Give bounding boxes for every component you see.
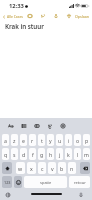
- button[interactable]: f: [29, 148, 36, 160]
- staticText: j: [59, 151, 61, 158]
- staticText: v: [51, 165, 54, 172]
- button[interactable]: b: [58, 162, 66, 174]
- button[interactable]: Attach: [46, 122, 54, 130]
- staticText: Opslaan: [75, 14, 89, 19]
- button[interactable]: k: [65, 148, 72, 160]
- button[interactable]: retour: [69, 176, 90, 188]
- staticText: x: [30, 165, 33, 172]
- button[interactable]: Location: [66, 13, 72, 19]
- button[interactable]: x: [27, 162, 36, 174]
- button[interactable]: Text format: [7, 122, 15, 130]
- button[interactable]: d: [20, 148, 27, 160]
- button[interactable]: m: [83, 148, 90, 160]
- button[interactable]: q: [2, 148, 9, 160]
- button[interactable]: Camera: [27, 13, 33, 19]
- button[interactable]: Emoji keyboard: [14, 176, 22, 188]
- staticText: n: [70, 165, 74, 172]
- staticText: m: [84, 151, 89, 158]
- staticText: Alle Cases: [7, 14, 23, 19]
- button[interactable]: Checklist: [20, 122, 28, 130]
- button[interactable]: w: [16, 162, 25, 174]
- staticText: k: [67, 151, 70, 158]
- button[interactable]: spatie: [24, 176, 67, 188]
- staticText: 123: [4, 180, 11, 185]
- button[interactable]: r: [29, 134, 36, 146]
- button[interactable]: u: [56, 134, 63, 146]
- button[interactable]: i: [65, 134, 72, 146]
- button[interactable]: 123: [2, 176, 12, 188]
- staticText: a: [4, 137, 7, 144]
- button[interactable]: c: [38, 162, 46, 174]
- staticText: w: [18, 165, 23, 172]
- button[interactable]: y: [47, 134, 54, 146]
- button[interactable]: Opslaan: [75, 14, 92, 19]
- staticText: spatie: [40, 180, 52, 185]
- staticText: l: [77, 151, 79, 158]
- staticText: e: [22, 137, 25, 144]
- staticText: r: [31, 137, 34, 144]
- button[interactable]: h: [47, 148, 54, 160]
- staticText: p: [85, 137, 89, 144]
- button[interactable]: z: [11, 134, 18, 146]
- staticText: i: [68, 137, 70, 144]
- staticText: h: [49, 151, 53, 158]
- button[interactable]: Microphone: [53, 13, 59, 19]
- button[interactable]: g: [38, 148, 45, 160]
- staticText: y: [49, 137, 52, 144]
- button[interactable]: s: [11, 148, 18, 160]
- staticText: b: [60, 165, 64, 172]
- staticText: o: [76, 137, 80, 144]
- staticText: q: [4, 151, 8, 158]
- staticText: c: [41, 165, 44, 172]
- button[interactable]: j: [56, 148, 63, 160]
- button[interactable]: Dictate: [78, 192, 84, 198]
- staticText: z: [13, 137, 16, 144]
- staticText: t: [41, 137, 43, 144]
- button[interactable]: Alle Cases: [0, 14, 25, 19]
- button[interactable]: n: [68, 162, 76, 174]
- staticText: 12:33: [9, 2, 24, 10]
- button[interactable]: Backspace: [80, 162, 90, 174]
- staticText: f: [32, 151, 34, 158]
- button[interactable]: Shift: [2, 162, 12, 174]
- staticText: g: [40, 151, 44, 158]
- staticText: retour: [74, 180, 86, 185]
- staticText: Krak in stuur: [5, 22, 44, 30]
- button[interactable]: e: [20, 134, 27, 146]
- staticText: d: [22, 151, 26, 158]
- button[interactable]: o: [74, 134, 81, 146]
- button[interactable]: t: [38, 134, 45, 146]
- staticText: s: [13, 151, 16, 158]
- button[interactable]: a: [2, 134, 9, 146]
- button[interactable]: Table: [33, 122, 41, 130]
- staticText: u: [58, 137, 62, 144]
- button[interactable]: Switch keyboard: [5, 192, 11, 198]
- button[interactable]: Attach: [40, 13, 46, 19]
- button[interactable]: p: [83, 134, 90, 146]
- button[interactable]: Camera: [59, 122, 67, 130]
- button[interactable]: v: [48, 162, 56, 174]
- button[interactable]: l: [74, 148, 81, 160]
